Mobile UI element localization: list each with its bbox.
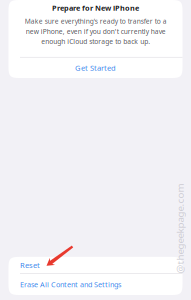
staticText: @thegeekpage.com xyxy=(135,222,191,235)
button[interactable]: Get Started xyxy=(8,58,182,78)
button[interactable]: Erase All Content and Settings xyxy=(8,274,182,295)
staticText: Erase All Content and Settings xyxy=(20,280,121,289)
staticText: Prepare for New iPhone xyxy=(52,3,139,13)
button[interactable]: Reset xyxy=(8,257,182,273)
staticText: Get Started xyxy=(75,63,116,73)
staticText: Make sure everything's ready to transfer… xyxy=(24,17,166,46)
staticText: Reset xyxy=(20,260,40,270)
